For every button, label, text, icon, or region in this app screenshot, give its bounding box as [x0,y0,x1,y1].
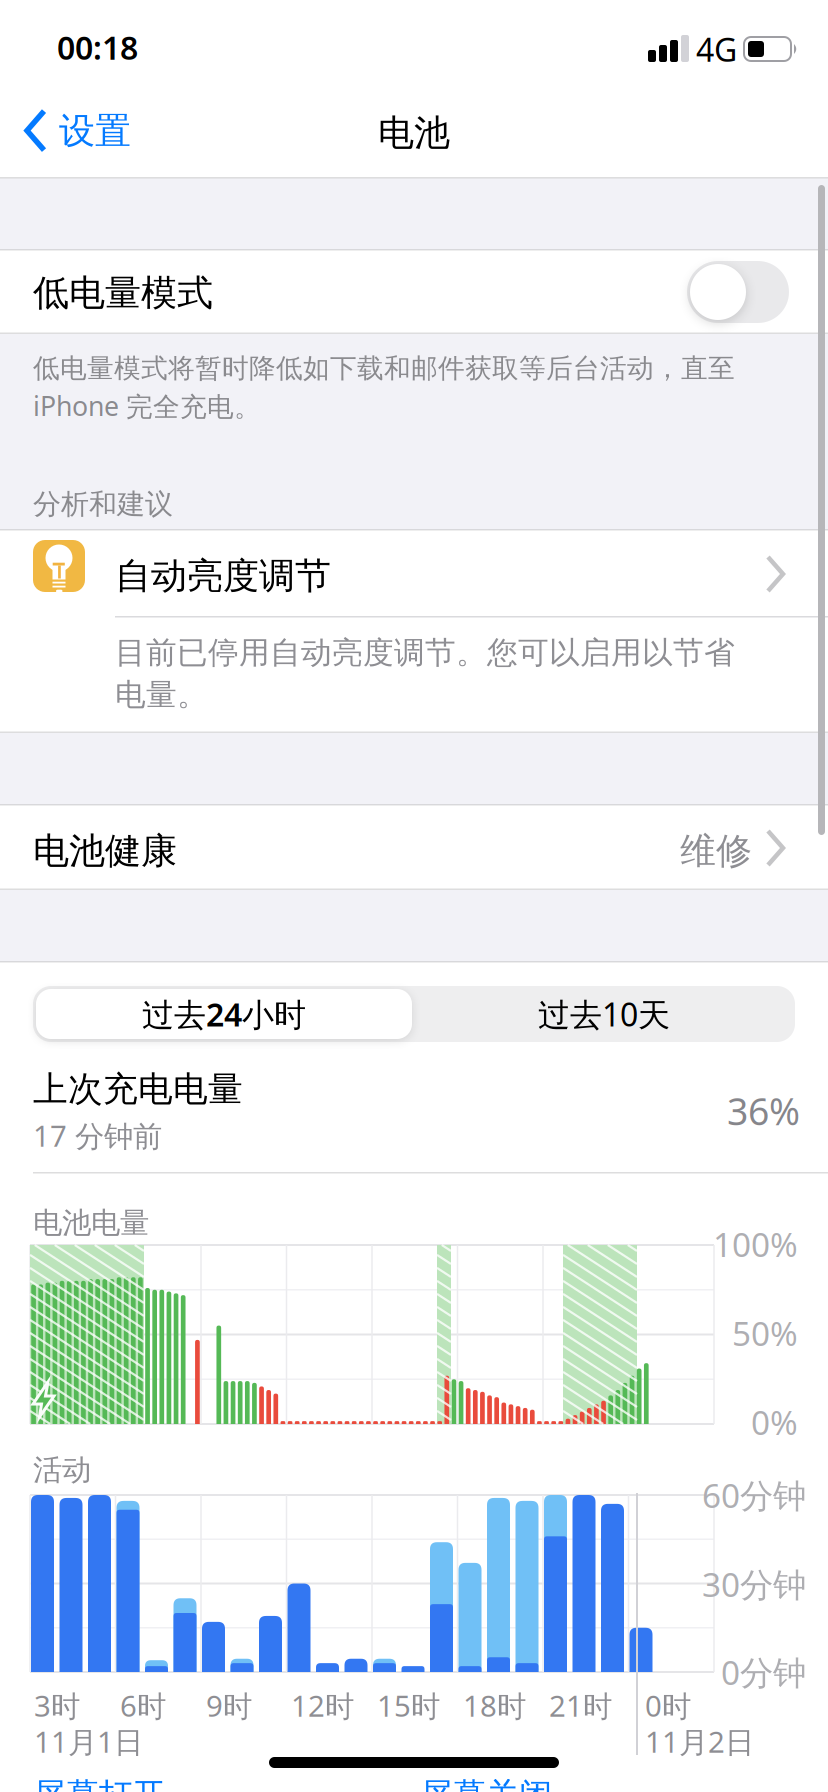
staticText: 3时 [34,1686,80,1725]
staticText: 低电量模式将暂时降低如下载和邮件获取等后台活动，直至 [33,352,735,385]
staticText: 自动亮度调节 [115,554,331,598]
staticText: 设置 [59,109,131,153]
staticText: 18时 [463,1686,526,1725]
staticText: 电池健康 [33,829,177,873]
staticText: 15时 [377,1686,440,1725]
staticText: 活动 [33,1452,91,1488]
staticText: 低电量模式 [33,271,213,315]
staticText: 屏幕打开 [33,1775,165,1792]
staticText: 分析和建议 [33,487,173,521]
button[interactable]: 屏幕关闭 [420,1775,552,1792]
staticText: 目前已停用自动亮度调节。您可以启用以节省 [115,634,735,672]
staticText: 11月1日 [34,1722,143,1761]
button[interactable]: 自动亮度调节 [0,530,828,616]
button[interactable]: 低电量模式 [687,261,789,323]
staticText: 100% [713,1222,798,1266]
button[interactable]: 过去24小时 [36,989,412,1039]
staticText: 电池 [378,111,450,155]
button[interactable]: 电池健康 [0,805,828,889]
staticText: 0% [751,1400,798,1444]
staticText: 50% [732,1311,798,1355]
staticText: 过去10天 [538,993,670,1035]
staticText: iPhone 完全充电。 [33,388,261,424]
staticText: 30分钟 [702,1562,806,1606]
staticText: 电池电量 [33,1205,149,1241]
staticText: 0分钟 [721,1650,806,1694]
staticText: 17 分钟前 [33,1116,162,1155]
staticText: 电量。 [115,676,208,714]
staticText: 36% [727,1086,800,1136]
button[interactable]: 屏幕打开 [33,1775,165,1792]
staticText: 21时 [549,1686,612,1725]
staticText: 屏幕关闭 [420,1775,552,1792]
staticText: 00:18 [57,26,138,68]
staticText: 60分钟 [702,1473,806,1517]
button[interactable]: 过去10天 [416,989,792,1039]
staticText: 9时 [206,1686,252,1725]
button[interactable]: 返回设置 [24,109,131,153]
staticText: 维修 [680,829,752,873]
staticText: 上次充电电量 [33,1068,243,1111]
staticText: 11月2日 [645,1722,754,1761]
staticText: 4G [696,28,737,70]
staticText: 12时 [291,1686,354,1725]
staticText: 过去24小时 [142,993,306,1035]
staticText: 0时 [645,1686,691,1725]
staticText: 6时 [120,1686,166,1725]
